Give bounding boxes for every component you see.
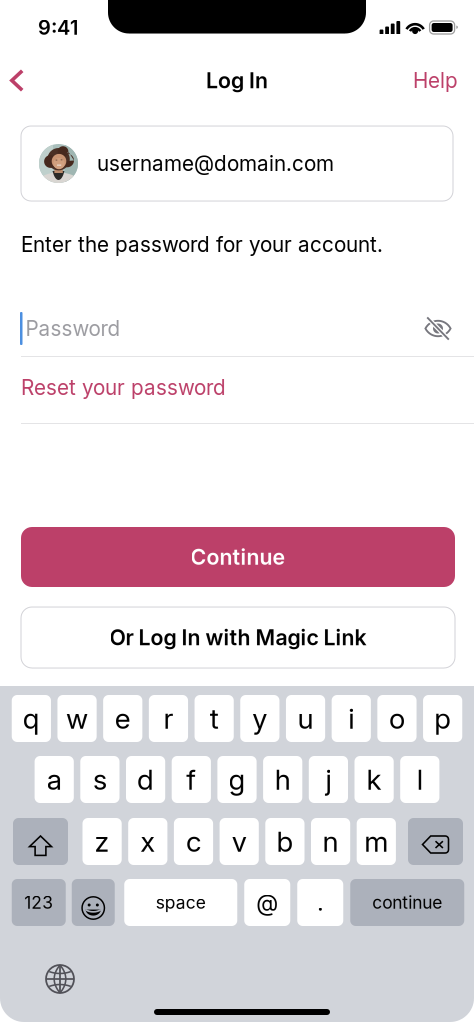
staticText: z: [95, 825, 110, 858]
staticText: Log In: [206, 68, 268, 93]
staticText: .: [317, 889, 323, 916]
staticText: g: [228, 763, 245, 796]
staticText: k: [367, 763, 382, 796]
staticText: p: [434, 702, 451, 735]
staticText: continue: [372, 892, 442, 913]
staticText: u: [298, 702, 314, 735]
button[interactable]: w: [57, 695, 97, 742]
staticText: j: [325, 763, 331, 796]
button[interactable]: l: [400, 756, 439, 803]
staticText: r: [163, 702, 173, 735]
button[interactable]: Switch keyboard: [38, 957, 82, 1001]
staticText: Continue: [190, 544, 285, 570]
button[interactable]: x: [128, 818, 167, 865]
staticText: q: [23, 702, 40, 735]
button[interactable]: 123: [12, 879, 66, 926]
button[interactable]: k: [354, 756, 394, 803]
button[interactable]: Show password: [414, 316, 452, 341]
button[interactable]: Or Log In with Magic Link: [0, 587, 474, 668]
staticText: c: [186, 825, 201, 858]
staticText: Or Log In with Magic Link: [109, 625, 366, 650]
button[interactable]: @: [244, 879, 290, 926]
staticText: e: [115, 702, 131, 735]
staticText: 123: [24, 892, 53, 913]
staticText: i: [348, 702, 354, 735]
button[interactable]: t: [195, 695, 234, 742]
button[interactable]: continue: [350, 879, 464, 926]
button[interactable]: y: [240, 695, 279, 742]
staticText: Password: [25, 316, 120, 341]
staticText: Reset your password: [21, 375, 226, 400]
staticText: a: [47, 763, 62, 796]
button[interactable]: h: [263, 756, 302, 803]
staticText: v: [232, 825, 247, 858]
button[interactable]: .: [297, 879, 343, 926]
staticText: d: [137, 763, 154, 796]
staticText: t: [210, 702, 219, 735]
staticText: m: [364, 825, 388, 858]
button[interactable]: u: [286, 695, 325, 742]
button[interactable]: z: [82, 818, 122, 865]
button[interactable]: f: [172, 756, 211, 803]
staticText: l: [417, 763, 423, 796]
staticText: f: [186, 763, 196, 796]
staticText: 9:41: [38, 15, 78, 40]
button[interactable]: Help: [397, 56, 474, 104]
button[interactable]: q: [12, 695, 51, 742]
staticText: s: [93, 763, 107, 796]
button[interactable]: Emoji: [72, 879, 115, 926]
button[interactable]: Reset your password: [0, 357, 474, 423]
button[interactable]: i: [332, 695, 371, 742]
button[interactable]: Delete: [408, 818, 463, 865]
staticText: space: [156, 892, 206, 913]
button[interactable]: d: [126, 756, 165, 803]
staticText: Help: [413, 68, 458, 93]
button[interactable]: o: [377, 695, 417, 742]
button[interactable]: e: [103, 695, 142, 742]
staticText: x: [140, 825, 155, 858]
staticText: Enter the password for your account.: [21, 232, 383, 257]
staticText: w: [66, 702, 88, 735]
button[interactable]: s: [80, 756, 119, 803]
button[interactable]: v: [220, 818, 259, 865]
button[interactable]: a: [35, 756, 74, 803]
staticText: o: [389, 702, 405, 735]
button[interactable]: c: [174, 818, 213, 865]
staticText: b: [276, 825, 293, 858]
button[interactable]: Back: [0, 56, 34, 104]
staticText: n: [323, 825, 339, 858]
button[interactable]: m: [357, 818, 396, 865]
button[interactable]: space: [124, 879, 237, 926]
staticText: username@domain.com: [97, 151, 334, 176]
button[interactable]: b: [265, 818, 304, 865]
staticText: @: [256, 889, 278, 916]
button[interactable]: Continue: [0, 527, 474, 587]
button[interactable]: j: [309, 756, 348, 803]
button[interactable]: Shift: [13, 818, 68, 865]
button[interactable]: g: [217, 756, 257, 803]
button[interactable]: p: [423, 695, 462, 742]
button[interactable]: n: [311, 818, 350, 865]
staticText: y: [252, 702, 267, 735]
button[interactable]: r: [149, 695, 188, 742]
staticText: h: [275, 763, 291, 796]
